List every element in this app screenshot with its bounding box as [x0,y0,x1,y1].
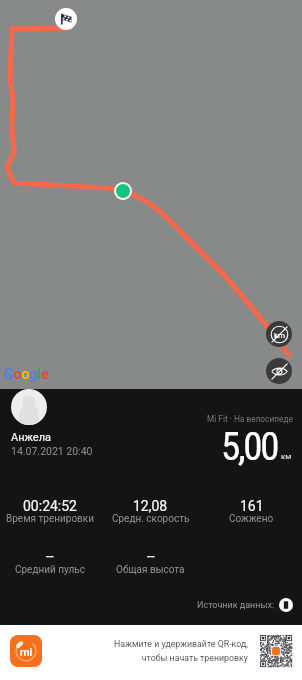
button[interactable]: User avatar [11,389,47,425]
staticText: чтобы начать тренировку [141,653,248,663]
staticText: km [274,331,286,340]
staticText: Средний пульс [15,564,85,576]
staticText: Google [4,366,49,382]
staticText: 14.07.2021 20:40 [11,445,93,457]
staticText: 00:24:52 [23,498,77,514]
button[interactable]: Data source: phone [279,598,293,612]
staticText: Средн. скорость [112,513,190,525]
button[interactable]: QR code [260,635,292,667]
button[interactable]: Hide track [266,358,292,384]
staticText: Общая высота [116,564,185,576]
button[interactable]: Hide kilometre markers [266,321,292,347]
staticText: Сожжено [229,513,274,525]
staticText: 161 [240,498,264,514]
staticText: 5,00 [221,424,278,470]
staticText: Источник данных: [197,600,275,611]
staticText: -- [46,548,54,564]
staticText: Время тренировки [6,513,95,525]
staticText: -- [147,548,155,564]
staticText: Анжела [11,431,52,444]
staticText: Нажмите и удерживайте QR-код, [114,639,248,649]
button[interactable]: Mi Fit [10,635,42,667]
staticText: км [281,452,292,461]
staticText: mi [20,646,33,659]
staticText: Mi Fit · На велосипеде [207,414,293,424]
staticText: 12,08 [133,498,168,514]
